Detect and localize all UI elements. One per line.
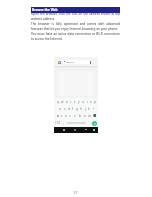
button[interactable]: . (88, 120, 92, 126)
staticText: 37 (73, 190, 78, 195)
button[interactable]: z (60, 113, 64, 118)
button[interactable]: v (72, 113, 77, 118)
button[interactable]: d (67, 106, 71, 111)
button[interactable]: i (85, 99, 89, 104)
button[interactable]: u (81, 99, 85, 104)
other: Google (58, 61, 61, 64)
button[interactable]: Shift (55, 113, 60, 118)
staticText: h (80, 107, 82, 111)
staticText: n (84, 114, 86, 118)
staticText: c (69, 114, 71, 118)
staticText: w (61, 100, 64, 104)
button[interactable]: a (57, 106, 62, 111)
button[interactable]: k (87, 106, 91, 111)
staticText: a (59, 107, 61, 111)
button[interactable]: o (89, 99, 93, 104)
staticText: i (87, 100, 88, 104)
staticText: , (63, 121, 64, 125)
button[interactable]: t (73, 99, 77, 104)
staticText: k (88, 107, 90, 111)
button[interactable]: y (77, 99, 81, 104)
staticText: f (72, 107, 74, 111)
staticText: u (82, 100, 84, 104)
button[interactable]: s (62, 106, 67, 111)
button[interactable]: ?12 (55, 120, 61, 126)
staticText: x (65, 114, 67, 118)
staticText: . (90, 121, 91, 125)
button[interactable]: b (77, 113, 82, 118)
button[interactable]: n (82, 113, 87, 118)
staticText: y (78, 100, 80, 104)
button[interactable]: j (83, 106, 87, 111)
button[interactable]: w (60, 99, 65, 104)
button[interactable]: , (61, 120, 65, 126)
button[interactable]: Send (92, 121, 97, 126)
button[interactable]: r (69, 99, 73, 104)
staticText: Browse the Web (32, 8, 58, 12)
staticText: ?12 (55, 121, 61, 125)
button[interactable]: p (93, 99, 97, 104)
staticText: o (90, 100, 92, 104)
button[interactable]: f (71, 106, 75, 111)
button[interactable]: Space (65, 120, 88, 126)
staticText: t (74, 100, 76, 104)
button[interactable]: Backspace (92, 113, 97, 118)
button[interactable]: g (75, 106, 79, 111)
button[interactable] (63, 60, 90, 64)
staticText: q (57, 100, 59, 104)
staticText: d (68, 107, 70, 111)
staticText: v (74, 114, 76, 118)
staticText: l (93, 107, 94, 111)
staticText: g (76, 107, 78, 111)
staticText: b (79, 114, 81, 118)
staticText: Open the browser, click the URL on the c… (31, 12, 120, 41)
button[interactable]: e (65, 99, 69, 104)
staticText: j (85, 107, 86, 111)
staticText: p (94, 100, 96, 104)
staticText: m (88, 114, 91, 118)
button[interactable]: x (64, 113, 68, 118)
staticText: z (61, 114, 63, 118)
button[interactable]: c (68, 113, 72, 118)
button[interactable]: Browse the Web (31, 7, 120, 13)
button[interactable]: m (87, 113, 92, 118)
button[interactable]: l (91, 106, 95, 111)
button[interactable]: q (55, 99, 60, 104)
staticText: s (64, 107, 66, 111)
button[interactable]: h (79, 106, 83, 111)
staticText: r (70, 100, 72, 104)
staticText: e (66, 100, 68, 104)
